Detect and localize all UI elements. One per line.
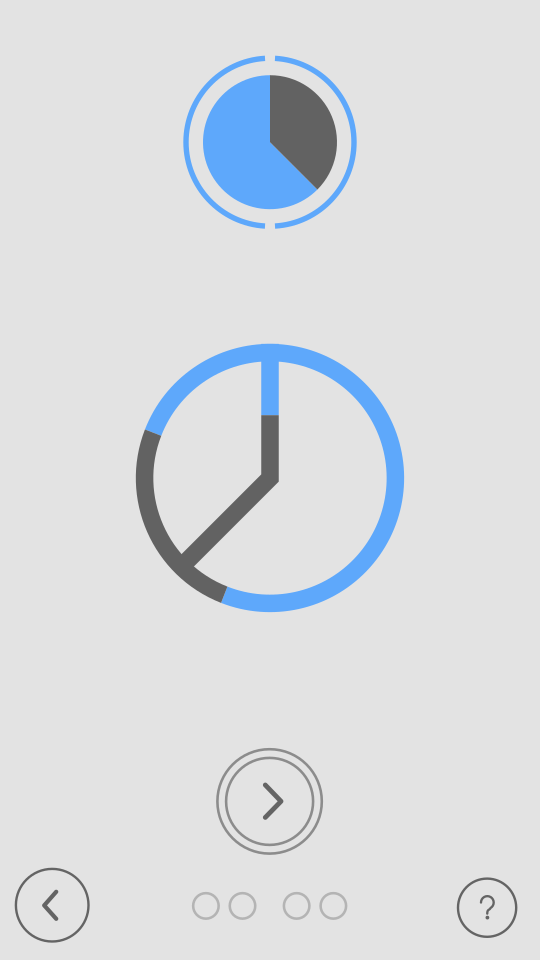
button[interactable]: Next — [0, 0, 540, 960]
button[interactable]: Help — [0, 0, 540, 960]
button[interactable]: Back — [0, 0, 540, 960]
